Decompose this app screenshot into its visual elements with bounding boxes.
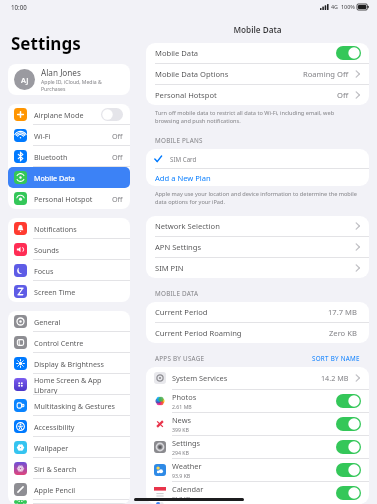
- button[interactable]: Airplane Mode: [8, 104, 130, 125]
- staticText: General: [34, 317, 123, 327]
- staticText: Siri & Search: [34, 464, 123, 474]
- staticText: Wallpaper: [34, 443, 123, 453]
- button[interactable]: Photos: [146, 390, 369, 412]
- button[interactable]: Wi-Fi: [8, 125, 130, 146]
- staticText: News: [172, 415, 191, 425]
- button[interactable]: Display & Brightness: [8, 353, 130, 374]
- staticText: Mobile Data: [146, 24, 369, 35]
- staticText: MOBILE DATA: [155, 289, 360, 298]
- button[interactable]: Control Centre: [8, 332, 130, 353]
- button[interactable]: Face ID & Passcode: [8, 500, 130, 504]
- staticText: Network Selection: [155, 221, 353, 231]
- staticText: Bluetooth: [34, 152, 112, 162]
- button[interactable]: Current Period Roaming: [146, 323, 369, 343]
- staticText: 294 KB: [172, 449, 189, 456]
- button[interactable]: Multitasking & Gestures: [8, 395, 130, 416]
- staticText: Current Period Roaming: [155, 328, 329, 338]
- staticText: Settings: [172, 438, 201, 448]
- staticText: Mobile Data Options: [155, 69, 303, 79]
- button[interactable]: Weather: [146, 459, 369, 481]
- button[interactable]: Mobile Data: [8, 167, 130, 188]
- staticText: 93.9 KB: [172, 472, 191, 479]
- button[interactable]: SIM PIN: [146, 258, 369, 278]
- staticText: AJ: [21, 75, 29, 85]
- button[interactable]: Sounds: [8, 239, 130, 260]
- staticText: Screen Time: [34, 287, 123, 297]
- button[interactable]: Add a New Plan: [146, 169, 369, 186]
- staticText: Off: [112, 131, 123, 141]
- staticText: Control Centre: [34, 338, 123, 348]
- button[interactable]: Accessibility: [8, 416, 130, 437]
- staticText: Apple Pencil: [34, 485, 123, 495]
- button[interactable]: AJ: [8, 64, 130, 95]
- staticText: SIM PIN: [155, 263, 353, 273]
- button[interactable]: Network Selection: [146, 216, 369, 236]
- button[interactable]: Siri & Search: [8, 458, 130, 479]
- button[interactable]: Current Period: [146, 302, 369, 322]
- staticText: Zero KB: [329, 328, 357, 338]
- staticText: Notifications: [34, 224, 123, 234]
- staticText: Mobile Data: [155, 48, 336, 58]
- staticText: Off: [337, 90, 349, 100]
- button[interactable]: Calendar: [146, 482, 369, 504]
- staticText: Home Screen & App Library: [34, 375, 123, 395]
- staticText: SIM Card: [170, 155, 197, 163]
- button[interactable]: System Services: [146, 367, 369, 389]
- button[interactable]: Notifications: [8, 218, 130, 239]
- staticText: 4G: [331, 3, 339, 10]
- staticText: 399 KB: [172, 426, 189, 433]
- staticText: Mobile Data: [34, 173, 123, 183]
- staticText: Sounds: [34, 245, 123, 255]
- staticText: MOBILE PLANS: [155, 136, 360, 145]
- button[interactable]: General: [8, 311, 130, 332]
- button[interactable]: Personal Hotspot: [8, 188, 130, 209]
- staticText: Apple may use your location and device i…: [155, 190, 357, 206]
- staticText: Off: [112, 194, 123, 204]
- staticText: Personal Hotspot: [34, 194, 112, 204]
- staticText: Accessibility: [34, 422, 123, 432]
- button[interactable]: Mobile Data Options: [146, 64, 369, 84]
- button[interactable]: Bluetooth: [8, 146, 130, 167]
- staticText: APN Settings: [155, 242, 353, 252]
- staticText: Airplane Mode: [34, 110, 101, 120]
- staticText: Current Period: [155, 307, 328, 317]
- staticText: 14.2 MB: [321, 373, 349, 383]
- staticText: Settings: [11, 32, 81, 55]
- staticText: Add a New Plan: [155, 173, 211, 183]
- staticText: Roaming Off: [303, 69, 349, 79]
- staticText: APPS BY USAGE: [155, 354, 312, 363]
- staticText: Personal Hotspot: [155, 90, 337, 100]
- button[interactable]: Personal Hotspot: [146, 85, 369, 105]
- staticText: Calendar: [172, 484, 204, 494]
- button[interactable]: Home Screen & App Library: [8, 374, 130, 395]
- button[interactable]: Mobile Data: [146, 43, 369, 63]
- staticText: 17.7 MB: [328, 307, 357, 317]
- button[interactable]: Settings: [146, 436, 369, 458]
- staticText: 81.7 KB: [172, 495, 191, 502]
- staticText: Off: [112, 152, 123, 162]
- button[interactable]: APN Settings: [146, 237, 369, 257]
- button[interactable]: SORT BY NAME: [312, 354, 360, 363]
- button[interactable]: Screen Time: [8, 281, 130, 302]
- staticText: System Services: [172, 373, 228, 383]
- staticText: 2.61 MB: [172, 403, 192, 410]
- button[interactable]: News: [146, 413, 369, 435]
- staticText: Apple ID, iCloud, Media & Purchases: [41, 79, 124, 93]
- staticText: SORT BY NAME: [312, 354, 360, 363]
- staticText: 10:00: [11, 3, 27, 11]
- staticText: Wi-Fi: [34, 131, 112, 141]
- button[interactable]: SIM Card: [146, 149, 369, 168]
- button[interactable]: Wallpaper: [8, 437, 130, 458]
- staticText: Face ID & Passcode: [34, 500, 123, 504]
- button[interactable]: Focus: [8, 260, 130, 281]
- staticText: Alan Jones: [41, 67, 81, 78]
- staticText: Photos: [172, 392, 197, 402]
- staticText: 100%: [341, 3, 355, 10]
- staticText: Focus: [34, 266, 123, 276]
- button[interactable]: Apple Pencil: [8, 479, 130, 500]
- staticText: Display & Brightness: [34, 359, 123, 369]
- staticText: Multitasking & Gestures: [34, 401, 123, 411]
- staticText: Turn off mobile data to restrict all dat…: [155, 109, 357, 125]
- staticText: Weather: [172, 461, 202, 471]
